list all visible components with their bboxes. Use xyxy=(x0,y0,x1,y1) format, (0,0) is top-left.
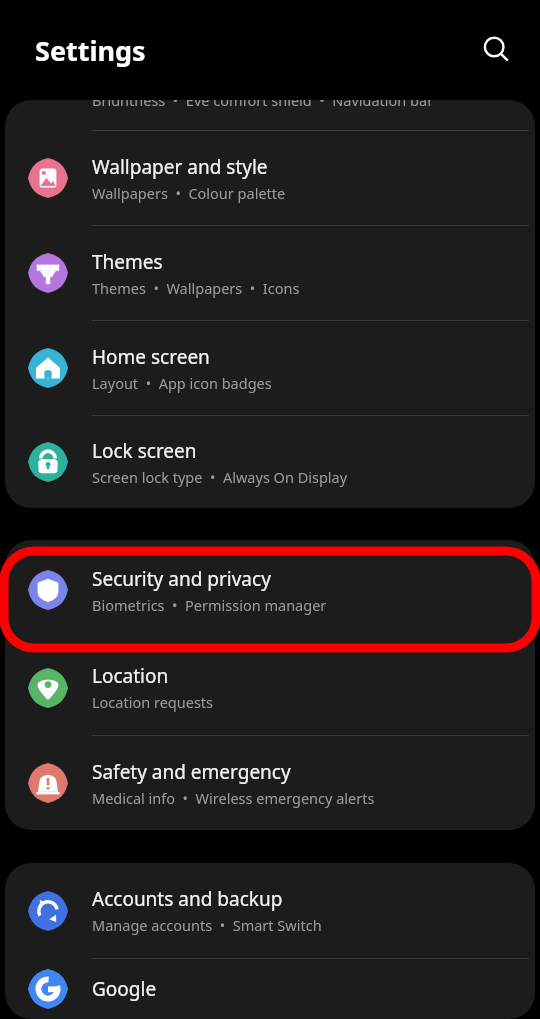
staticText: Themes • Wallpapers • Icons xyxy=(92,278,300,298)
staticText: Safety and emergency xyxy=(92,759,291,785)
staticText: Settings xyxy=(35,32,146,69)
staticText: Lock screen xyxy=(92,438,197,464)
staticText: Themes xyxy=(92,249,163,275)
staticText: Medical info • Wireless emergency alerts xyxy=(92,788,375,808)
button[interactable]: Accounts and backup xyxy=(5,863,535,958)
staticText: Home screen xyxy=(92,344,210,370)
button[interactable]: Lock screen xyxy=(5,416,535,508)
button[interactable]: Home screen xyxy=(5,321,535,415)
staticText: Wallpapers • Colour palette xyxy=(92,183,286,203)
button[interactable]: Safety and emergency xyxy=(5,736,535,830)
staticText: Manage accounts • Smart Switch xyxy=(92,915,322,935)
button[interactable]: Google xyxy=(5,959,535,1019)
button[interactable]: Security and privacy xyxy=(5,540,535,640)
staticText: Layout • App icon badges xyxy=(92,373,272,393)
staticText: Google xyxy=(92,976,157,1002)
staticText: Security and privacy xyxy=(92,566,271,592)
button[interactable]: Themes xyxy=(5,226,535,320)
staticText: Biometrics • Permission manager xyxy=(92,595,327,615)
staticText: Location xyxy=(92,663,169,689)
staticText: Location requests xyxy=(92,692,214,712)
button[interactable]: Wallpaper and style xyxy=(5,131,535,225)
staticText: Brightness • Eye comfort shield • Naviga… xyxy=(92,100,434,106)
staticText: Screen lock type • Always On Display xyxy=(92,467,348,487)
staticText: Wallpaper and style xyxy=(92,154,268,180)
staticText: Accounts and backup xyxy=(92,886,283,912)
button[interactable]: Location xyxy=(5,640,535,735)
button[interactable]: Search xyxy=(472,26,520,74)
